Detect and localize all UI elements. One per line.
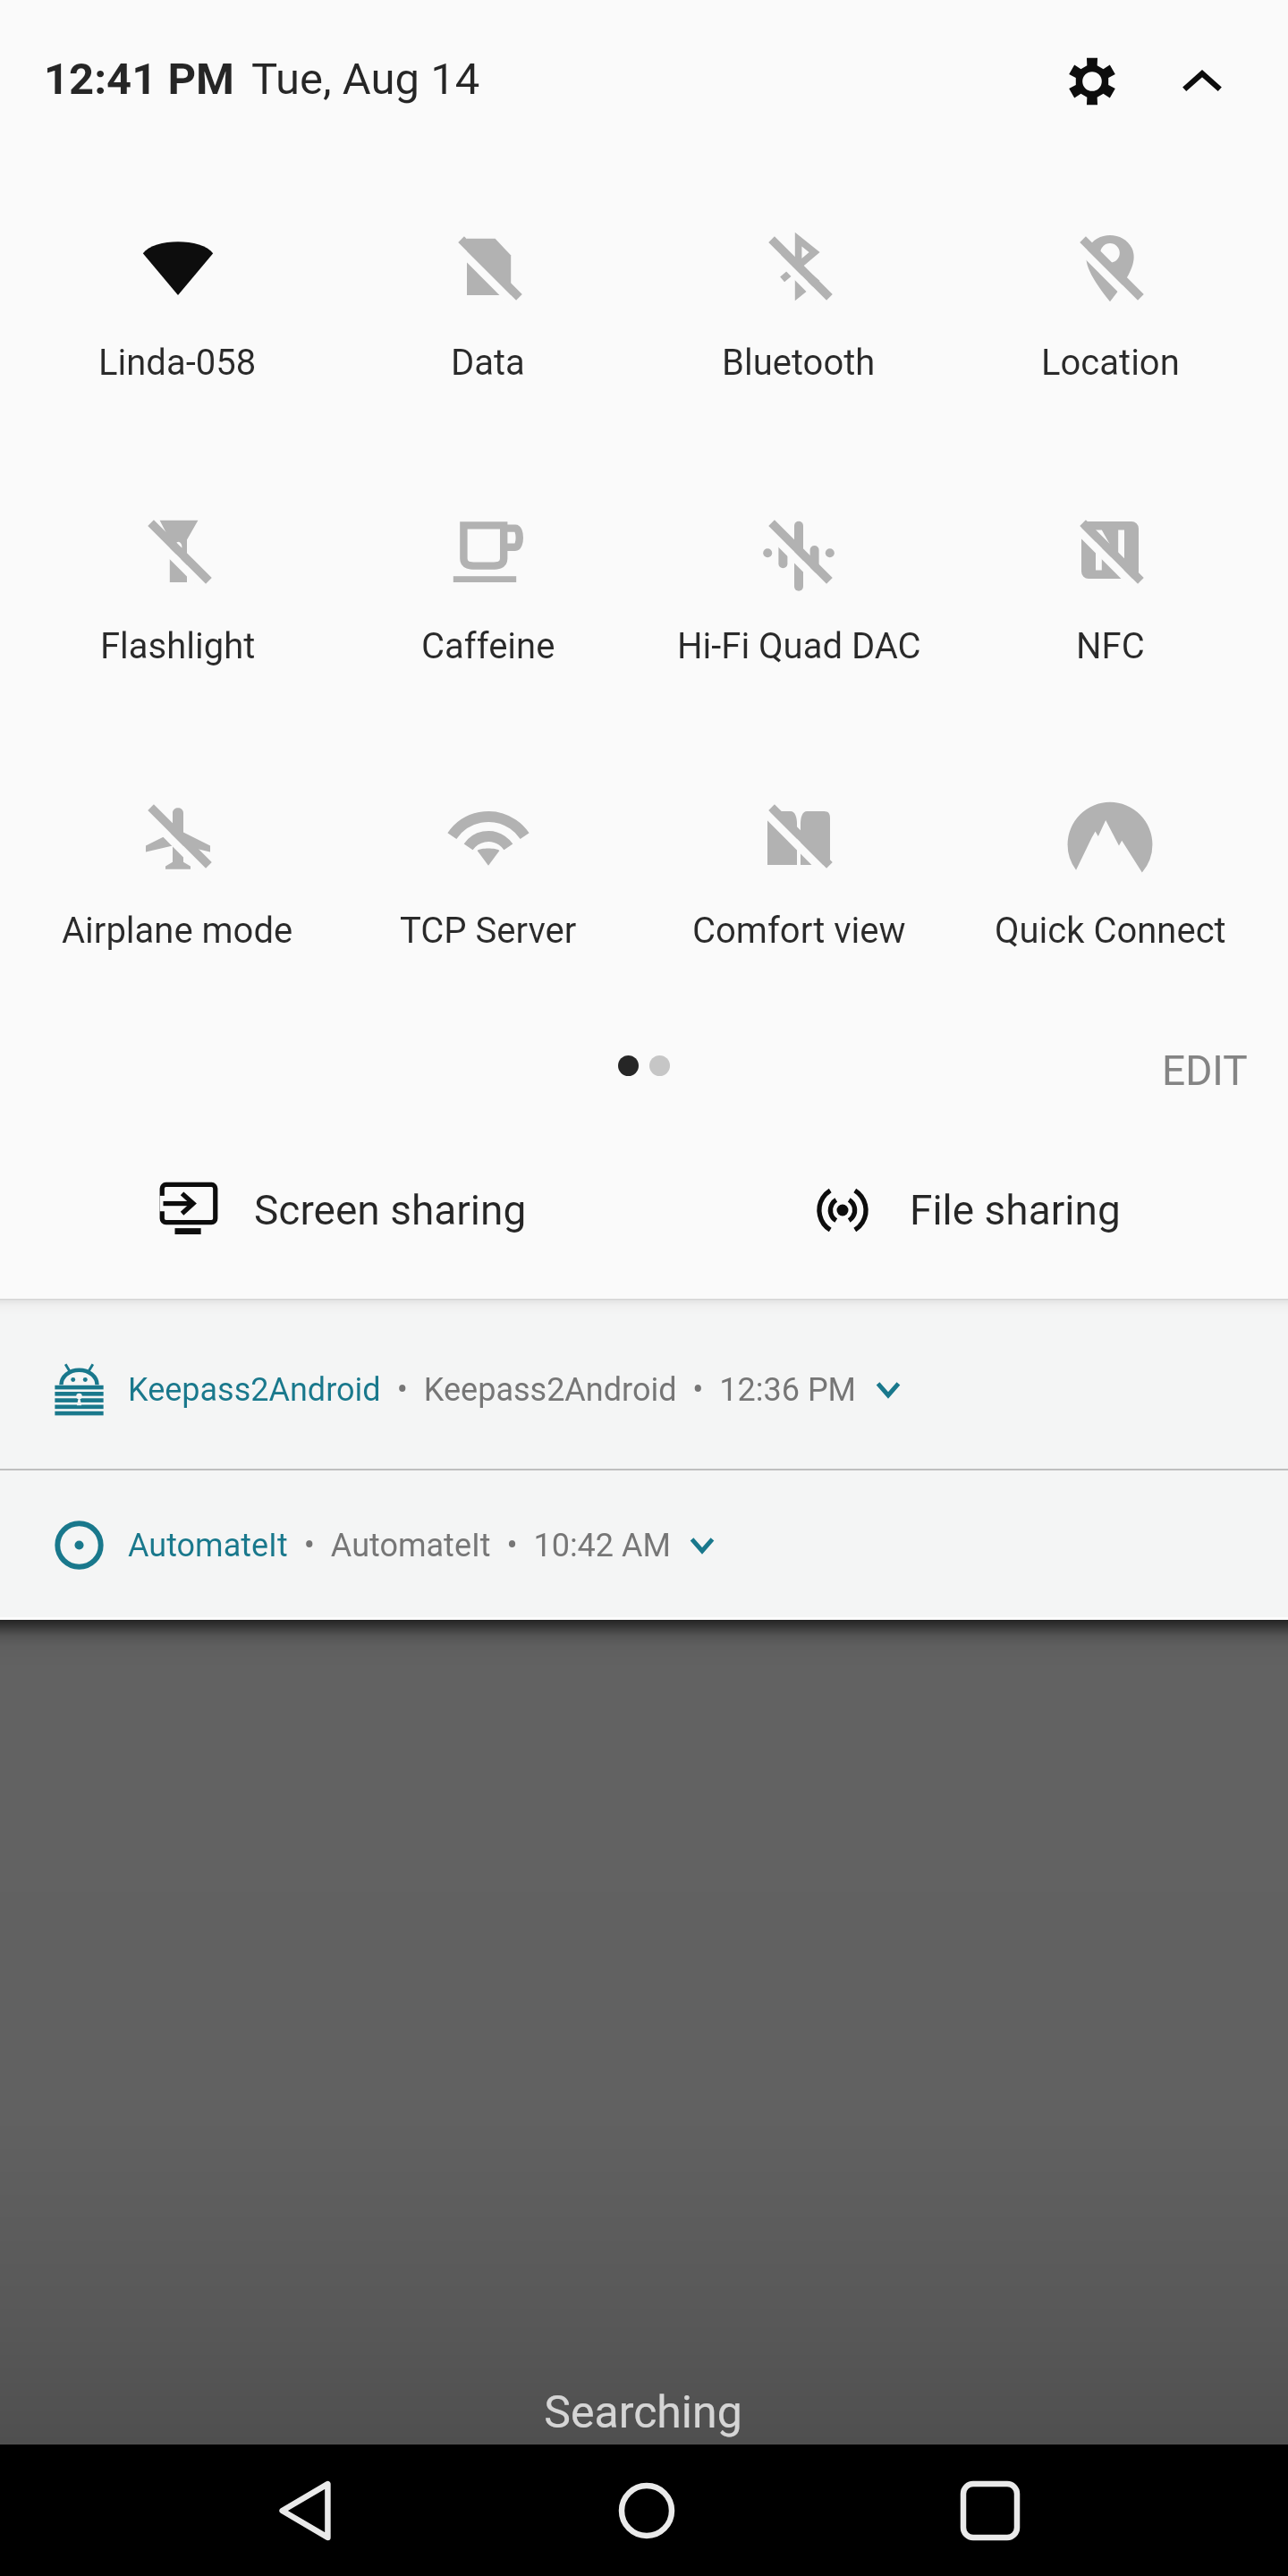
staticText: Tue, Aug 14 xyxy=(251,54,480,105)
button[interactable]: File sharing xyxy=(815,1178,1121,1242)
staticText: AutomateIt xyxy=(128,1527,288,1564)
button[interactable]: Hi-Fi Quad DAC xyxy=(643,479,954,697)
button[interactable]: NFC xyxy=(954,479,1266,697)
staticText: TCP Server xyxy=(400,910,577,952)
staticText: Data xyxy=(451,342,525,384)
staticText: • Keepass2Android • 12:36 PM xyxy=(381,1371,857,1409)
button[interactable]: Collapse panel xyxy=(1157,37,1247,126)
staticText: EDIT xyxy=(1162,1046,1248,1095)
button[interactable]: Airplane mode xyxy=(22,763,333,981)
staticText: Quick Connect xyxy=(995,910,1226,952)
button[interactable]: Flashlight xyxy=(22,479,333,697)
button[interactable]: Settings xyxy=(1047,37,1137,126)
staticText: • AutomateIt • 10:42 AM xyxy=(288,1527,671,1564)
button[interactable]: Screen sharing xyxy=(161,1178,527,1242)
staticText: Hi-Fi Quad DAC xyxy=(677,625,921,667)
staticText: Searching xyxy=(0,2386,1287,2439)
button[interactable]: Location xyxy=(954,195,1266,413)
staticText: NFC xyxy=(1076,625,1145,667)
button[interactable]: Data xyxy=(333,195,643,413)
staticText: 12:41 PM xyxy=(44,54,235,105)
button[interactable]: EDIT xyxy=(1135,1020,1275,1122)
button[interactable]: Home xyxy=(575,2445,718,2576)
button[interactable]: TCP Server xyxy=(333,763,643,981)
staticText: Comfort view xyxy=(692,910,906,952)
staticText: Bluetooth xyxy=(722,342,876,384)
staticText: Screen sharing xyxy=(254,1186,527,1234)
staticText: Flashlight xyxy=(100,625,256,667)
button[interactable]: Caffeine xyxy=(333,479,643,697)
staticText: Linda-058 xyxy=(98,342,257,384)
button[interactable]: Quick Connect xyxy=(954,763,1266,981)
staticText: Location xyxy=(1041,342,1180,384)
button[interactable]: Back xyxy=(233,2445,377,2576)
button[interactable]: Recent apps xyxy=(919,2445,1062,2576)
button[interactable]: Bluetooth xyxy=(643,195,954,413)
staticText: Caffeine xyxy=(421,625,555,667)
button[interactable]: Linda-058 xyxy=(22,195,333,413)
button[interactable]: AutomateIt xyxy=(0,1470,1288,1620)
staticText: Keepass2Android xyxy=(128,1371,381,1409)
staticText: Airplane mode xyxy=(62,910,293,952)
staticText: File sharing xyxy=(910,1186,1121,1234)
button[interactable]: Comfort view xyxy=(643,763,954,981)
button[interactable]: Keepass2Android xyxy=(0,1299,1288,1469)
